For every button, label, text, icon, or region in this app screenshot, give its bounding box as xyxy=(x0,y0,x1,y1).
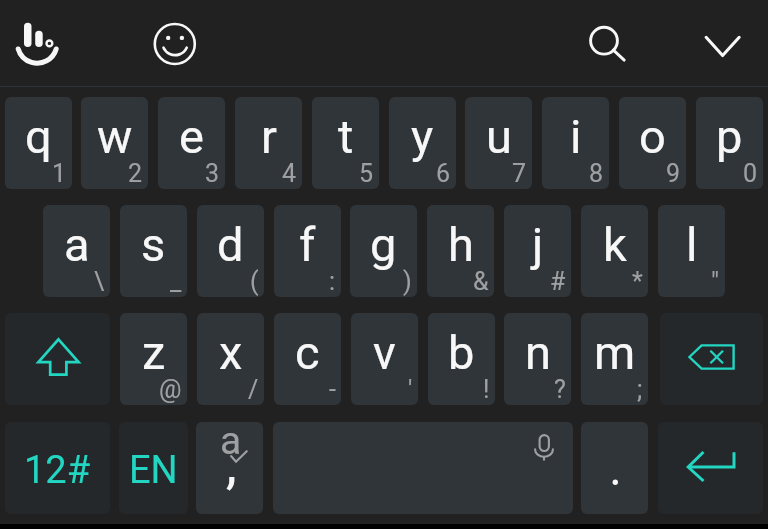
staticText: ) xyxy=(403,267,412,296)
button[interactable]: f xyxy=(274,205,341,297)
button[interactable]: q xyxy=(5,97,72,189)
staticText: x xyxy=(219,325,243,380)
staticText: 5 xyxy=(359,159,374,188)
staticText: 4 xyxy=(282,159,297,188)
button[interactable]: m xyxy=(581,313,648,405)
staticText: 0 xyxy=(743,159,758,188)
button[interactable]: Backspace xyxy=(660,313,763,405)
staticText: n xyxy=(525,325,551,380)
button[interactable]: z xyxy=(120,313,187,405)
button[interactable]: Shift xyxy=(5,313,110,405)
staticText: e xyxy=(179,109,204,164)
staticText: , xyxy=(226,433,237,496)
button[interactable]: Period xyxy=(581,422,648,514)
staticText: y xyxy=(411,109,434,164)
button[interactable]: s xyxy=(120,205,187,297)
button[interactable]: g xyxy=(350,205,417,297)
staticText: / xyxy=(248,375,259,404)
staticText: ( xyxy=(250,267,259,296)
button[interactable]: Space xyxy=(273,422,573,514)
staticText: # xyxy=(550,267,566,296)
button[interactable]: Switch language xyxy=(196,422,263,514)
staticText: \ xyxy=(94,267,105,296)
button[interactable]: t xyxy=(312,97,379,189)
button[interactable]: e xyxy=(158,97,225,189)
button[interactable]: a xyxy=(43,205,110,297)
button[interactable]: Emoji xyxy=(146,15,204,73)
staticText: l xyxy=(686,217,698,272)
staticText: z xyxy=(142,325,166,380)
staticText: f xyxy=(299,217,316,272)
staticText: @ xyxy=(159,375,182,404)
staticText: _ xyxy=(170,267,182,296)
staticText: 1 xyxy=(52,159,67,188)
button[interactable]: p xyxy=(696,97,763,189)
button[interactable]: Hide keyboard xyxy=(694,22,750,66)
staticText: o xyxy=(639,109,666,164)
staticText: : xyxy=(329,267,336,296)
staticText: r xyxy=(261,109,277,164)
staticText: ' xyxy=(408,375,413,404)
staticText: - xyxy=(329,375,336,404)
button[interactable]: l xyxy=(658,205,725,297)
button[interactable]: y xyxy=(389,97,456,189)
staticText: ; xyxy=(637,375,643,404)
staticText: c xyxy=(295,325,320,380)
staticText: 9 xyxy=(666,159,681,188)
button[interactable]: d xyxy=(197,205,264,297)
button[interactable]: x xyxy=(197,313,264,405)
staticText: 6 xyxy=(436,159,451,188)
staticText: v xyxy=(373,325,396,380)
staticText: a xyxy=(64,217,90,272)
button[interactable]: o xyxy=(619,97,686,189)
staticText: ! xyxy=(483,375,490,404)
staticText: j xyxy=(532,217,544,272)
staticText: 2 xyxy=(128,159,143,188)
button[interactable]: j xyxy=(504,205,571,297)
staticText: 7 xyxy=(512,159,527,188)
staticText: " xyxy=(711,267,720,296)
button[interactable]: 12# xyxy=(5,422,110,514)
button[interactable]: b xyxy=(428,313,495,405)
staticText: k xyxy=(603,217,627,272)
staticText: q xyxy=(25,109,52,164)
staticText: p xyxy=(716,109,743,164)
staticText: m xyxy=(594,325,636,380)
staticText: s xyxy=(141,217,166,272)
button[interactable]: c xyxy=(274,313,341,405)
button[interactable]: w xyxy=(81,97,148,189)
staticText: 3 xyxy=(205,159,220,188)
staticText: ? xyxy=(554,375,566,404)
button[interactable]: r xyxy=(235,97,302,189)
staticText: * xyxy=(632,267,643,296)
staticText: & xyxy=(473,267,489,296)
staticText: i xyxy=(570,109,582,164)
staticText: EN xyxy=(129,448,178,493)
button[interactable]: v xyxy=(351,313,418,405)
staticText: 8 xyxy=(589,159,604,188)
staticText: g xyxy=(370,217,397,272)
staticText: h xyxy=(448,217,474,272)
button[interactable]: i xyxy=(542,97,609,189)
button[interactable]: k xyxy=(581,205,648,297)
button[interactable]: EN xyxy=(119,422,188,514)
button[interactable]: Search xyxy=(578,14,634,70)
button[interactable]: h xyxy=(427,205,494,297)
staticText: u xyxy=(486,109,512,164)
button[interactable]: TouchPal menu xyxy=(2,8,72,78)
button[interactable]: u xyxy=(465,97,532,189)
staticText: t xyxy=(338,109,354,164)
staticText: b xyxy=(448,325,475,380)
staticText: d xyxy=(217,217,244,272)
button[interactable]: n xyxy=(504,313,571,405)
button[interactable]: Enter xyxy=(658,422,763,514)
staticText: 12# xyxy=(24,448,91,493)
staticText: a xyxy=(220,422,242,464)
staticText: w xyxy=(97,109,133,164)
